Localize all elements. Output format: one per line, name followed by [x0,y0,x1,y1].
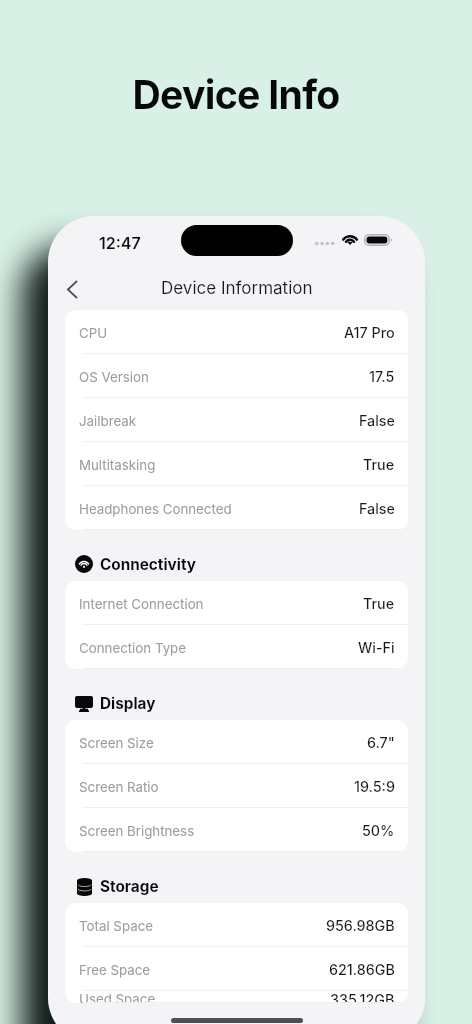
staticText: 19.5:9 [354,778,395,795]
button[interactable]: Used Space [65,991,408,1003]
button[interactable]: Total Space [65,903,408,947]
staticText: Display [100,694,156,713]
staticText: Internet Connection [79,596,204,612]
staticText: Connectivity [100,555,197,574]
staticText: Screen Ratio [79,779,159,795]
button[interactable]: Headphones Connected [65,486,408,530]
staticText: Device Information [161,278,313,299]
button[interactable]: Internet Connection [65,581,408,625]
staticText: 50% [362,822,395,839]
button[interactable]: Connection Type [65,625,408,669]
staticText: Device Info [0,71,472,118]
staticText: Used Space [79,991,156,1003]
staticText: Total Space [79,918,153,934]
staticText: Screen Size [79,735,154,751]
button[interactable]: Screen Size [65,720,408,764]
staticText: 17.5 [369,368,395,385]
staticText: Multitasking [79,457,156,473]
button[interactable]: Multitasking [65,442,408,486]
staticText: 335.12GB [330,991,395,1003]
button[interactable]: OS Version [65,354,408,398]
staticText: A17 Pro [344,324,395,341]
button[interactable]: Connectivity [65,530,408,581]
staticText: Screen Brightness [79,823,195,839]
staticText: 6.7" [367,734,395,751]
staticText: Free Space [79,962,151,978]
staticText: False [359,500,395,517]
staticText: 12:47 [99,233,141,252]
button[interactable]: Free Space [65,947,408,991]
button[interactable]: Back [50,268,94,310]
staticText: Headphones Connected [79,501,232,517]
staticText: Jailbreak [79,413,137,429]
staticText: True [363,456,395,473]
staticText: 956.98GB [326,917,395,934]
button[interactable]: CPU [65,310,408,354]
staticText: Wi-Fi [358,639,395,656]
staticText: False [359,412,395,429]
staticText: True [363,595,395,612]
button[interactable]: Screen Ratio [65,764,408,808]
staticText: OS Version [79,369,149,385]
button[interactable]: Screen Brightness [65,808,408,852]
button[interactable]: Storage [65,852,408,903]
button[interactable]: Display [65,669,408,720]
staticText: Connection Type [79,640,187,656]
staticText: 621.86GB [329,961,395,978]
staticText: Storage [100,877,159,896]
staticText: CPU [79,325,108,341]
button[interactable]: Jailbreak [65,398,408,442]
